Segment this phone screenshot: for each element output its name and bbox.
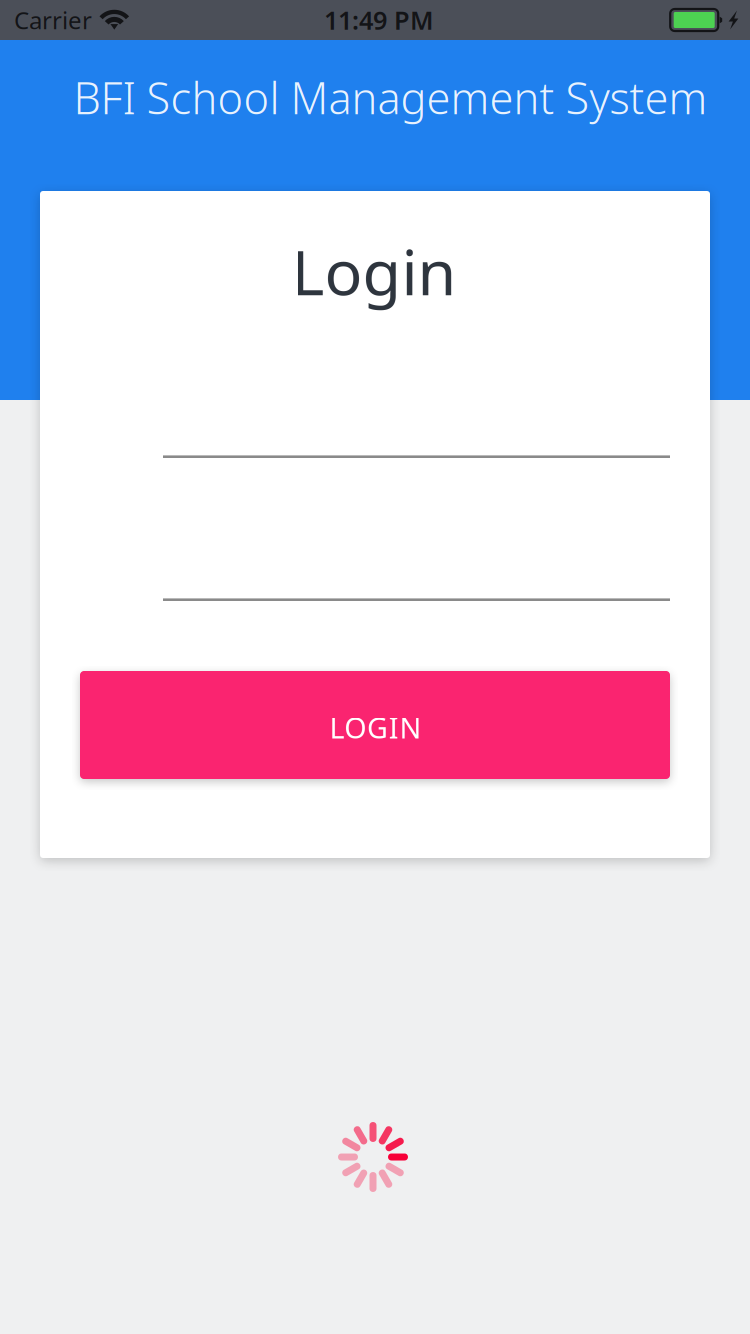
staticText: LOGIN [329, 708, 422, 747]
staticText: Carrier [14, 4, 92, 36]
staticText: Login [291, 229, 456, 313]
staticText: 11:49 PM [324, 3, 434, 37]
staticText: BFI School Management System [73, 68, 707, 127]
button[interactable]: LOGIN [80, 671, 670, 779]
